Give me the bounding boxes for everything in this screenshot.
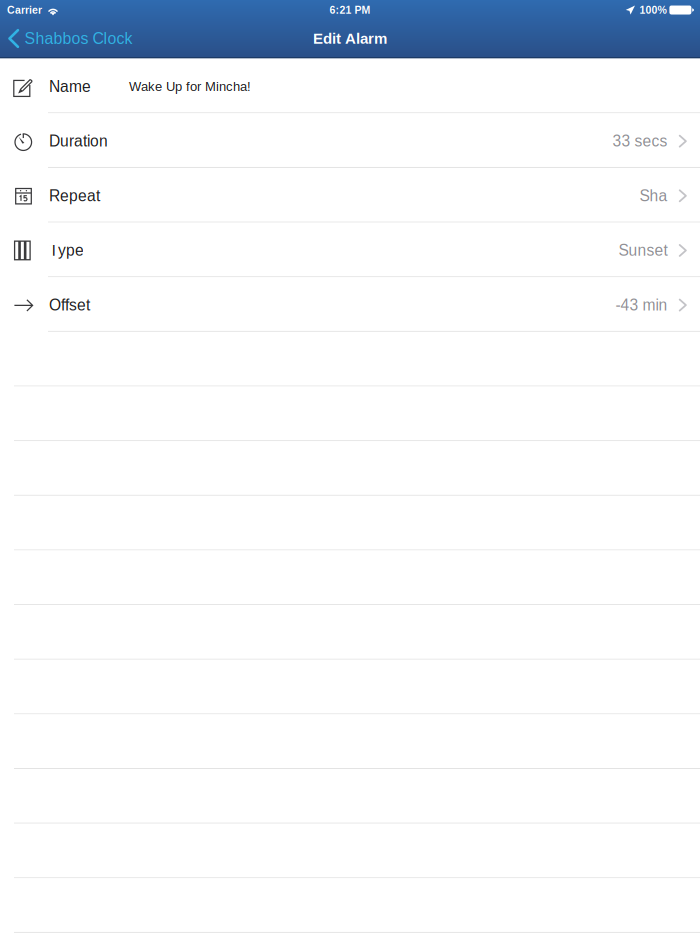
staticText: Repeat <box>49 187 100 204</box>
button[interactable]: Type <box>0 223 700 277</box>
button[interactable]: Offset <box>0 277 700 332</box>
staticText: Shabbos Clock <box>24 30 132 47</box>
staticText: Sunset <box>619 242 668 259</box>
button[interactable]: Name <box>0 59 700 113</box>
staticText: Duration <box>49 132 108 150</box>
staticText: Edit Alarm <box>313 30 387 47</box>
staticText: Type <box>49 242 84 259</box>
staticText: Carrier <box>7 4 42 16</box>
staticText: 100% <box>639 4 666 16</box>
staticText: Wake Up for Mincha! <box>129 79 251 94</box>
button[interactable]: Shabbos Clock <box>0 20 142 57</box>
staticText: Offset <box>49 296 90 314</box>
button[interactable]: Repeat <box>0 168 700 223</box>
button[interactable]: Duration <box>0 113 700 168</box>
staticText: 33 secs <box>613 132 668 150</box>
staticText: Name <box>49 78 91 95</box>
staticText: 6:21 PM <box>329 4 370 16</box>
staticText: Sha <box>640 187 668 204</box>
staticText: -43 min <box>616 296 668 314</box>
